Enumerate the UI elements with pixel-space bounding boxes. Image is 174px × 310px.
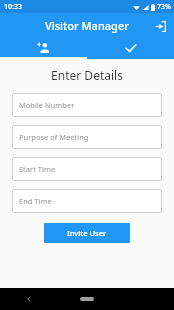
button[interactable]: Mobile Number: [12, 93, 162, 117]
button[interactable]: Approved visitors: [87, 38, 174, 57]
staticText: Visitor Manager: [45, 18, 129, 33]
button[interactable]: End Time: [12, 189, 162, 213]
button[interactable]: Back: [0, 288, 58, 310]
button[interactable]: Add visitor: [0, 38, 87, 57]
button[interactable]: Purpose of Meeting: [12, 125, 162, 149]
staticText: Invite User: [67, 228, 107, 238]
staticText: 10:33: [4, 2, 22, 12]
staticText: 73%: [157, 2, 171, 12]
button[interactable]: Logout: [150, 16, 170, 36]
staticText: Purpose of Meeting: [19, 132, 89, 142]
staticText: End Time: [19, 196, 52, 206]
button[interactable]: Start Time: [12, 157, 162, 181]
staticText: Enter Details: [0, 67, 174, 83]
button[interactable]: Home: [58, 288, 116, 310]
staticText: Mobile Number: [19, 100, 75, 110]
staticText: Start Time: [19, 164, 56, 174]
button[interactable]: Invite User: [44, 223, 130, 243]
